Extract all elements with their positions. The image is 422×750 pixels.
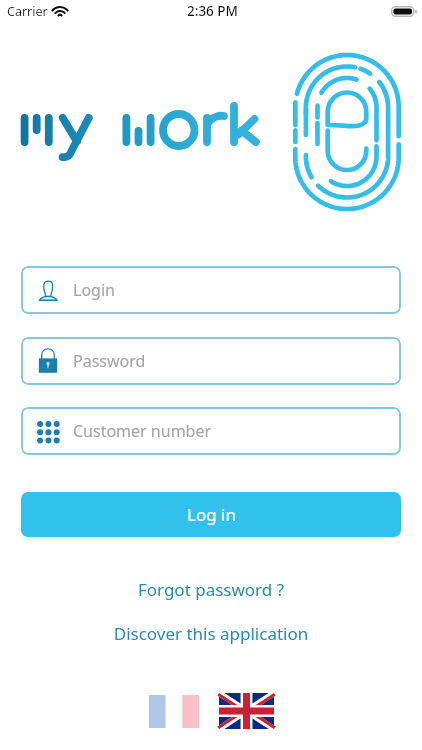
button[interactable]: Log in <box>21 492 401 537</box>
staticText: Carrier <box>7 3 48 20</box>
staticText: Log in <box>187 503 236 526</box>
button[interactable]: Password <box>21 337 401 385</box>
button[interactable]: Forgot password ? <box>0 578 422 601</box>
staticText: Customer number <box>73 420 212 442</box>
button[interactable]: Discover this application <box>0 622 422 645</box>
staticText: Password <box>73 350 146 372</box>
button[interactable]: Francais <box>149 695 199 728</box>
button[interactable]: English <box>219 693 274 729</box>
button[interactable]: Customer number <box>21 407 401 455</box>
staticText: Login <box>73 279 115 301</box>
staticText: 2:36 PM <box>187 2 238 20</box>
button[interactable]: Login <box>21 266 401 314</box>
